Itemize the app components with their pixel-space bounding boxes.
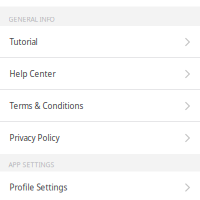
- staticText: APP SETTINGS: [8, 160, 54, 169]
- staticText: Profile Settings: [9, 182, 67, 193]
- staticText: GENERAL INFO: [8, 15, 54, 24]
- staticText: Help Center: [9, 69, 55, 79]
- button[interactable]: Tutorial: [0, 26, 200, 58]
- staticText: Privacy Policy: [9, 133, 59, 143]
- staticText: Terms & Conditions: [9, 101, 83, 111]
- staticText: Tutorial: [9, 37, 37, 47]
- button[interactable]: Privacy Policy: [0, 122, 200, 154]
- button[interactable]: Help Center: [0, 58, 200, 90]
- button[interactable]: Profile Settings: [0, 171, 200, 200]
- button[interactable]: Terms & Conditions: [0, 90, 200, 122]
